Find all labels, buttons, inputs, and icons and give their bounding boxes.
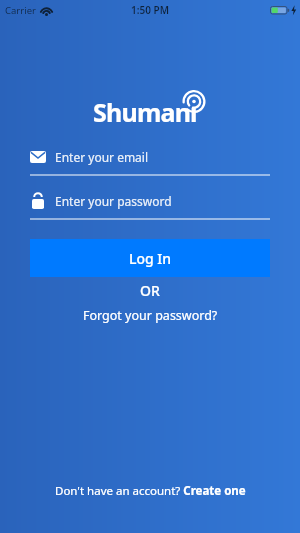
staticText: Log In	[129, 249, 172, 268]
button[interactable]: Enter your password	[30, 190, 270, 220]
staticText: 1:50 PM	[131, 3, 169, 17]
button[interactable]: Enter your email	[30, 146, 270, 176]
staticText: Carrier	[5, 4, 36, 17]
staticText: Enter your email	[55, 149, 149, 165]
button[interactable]: Forgot your password?	[83, 307, 218, 324]
staticText: Enter your password	[55, 193, 172, 209]
staticText: OR	[140, 281, 160, 300]
button[interactable]: Don't have an account? Create one	[55, 483, 246, 499]
button[interactable]: Log In	[30, 239, 270, 277]
